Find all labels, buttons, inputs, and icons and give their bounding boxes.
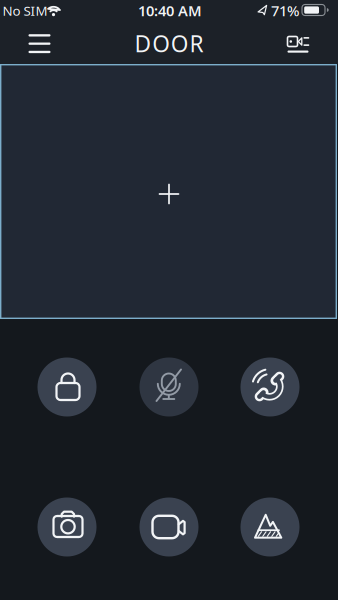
staticText: No SIM bbox=[2, 2, 47, 19]
staticText: 10:40 AM bbox=[138, 1, 202, 20]
button[interactable]: Menu bbox=[17, 26, 61, 62]
button[interactable]: Call bbox=[240, 357, 300, 417]
button[interactable]: Connect stream bbox=[0, 64, 337, 319]
staticText: 71% bbox=[271, 1, 299, 20]
button[interactable]: Take photo bbox=[37, 497, 97, 557]
button[interactable]: Record video bbox=[139, 497, 199, 557]
button[interactable]: Gallery bbox=[240, 497, 300, 557]
button[interactable]: Recordings bbox=[276, 26, 320, 62]
button[interactable]: Mute bbox=[139, 357, 199, 417]
staticText: DOOR bbox=[135, 28, 203, 58]
button[interactable]: Lock bbox=[37, 357, 97, 417]
